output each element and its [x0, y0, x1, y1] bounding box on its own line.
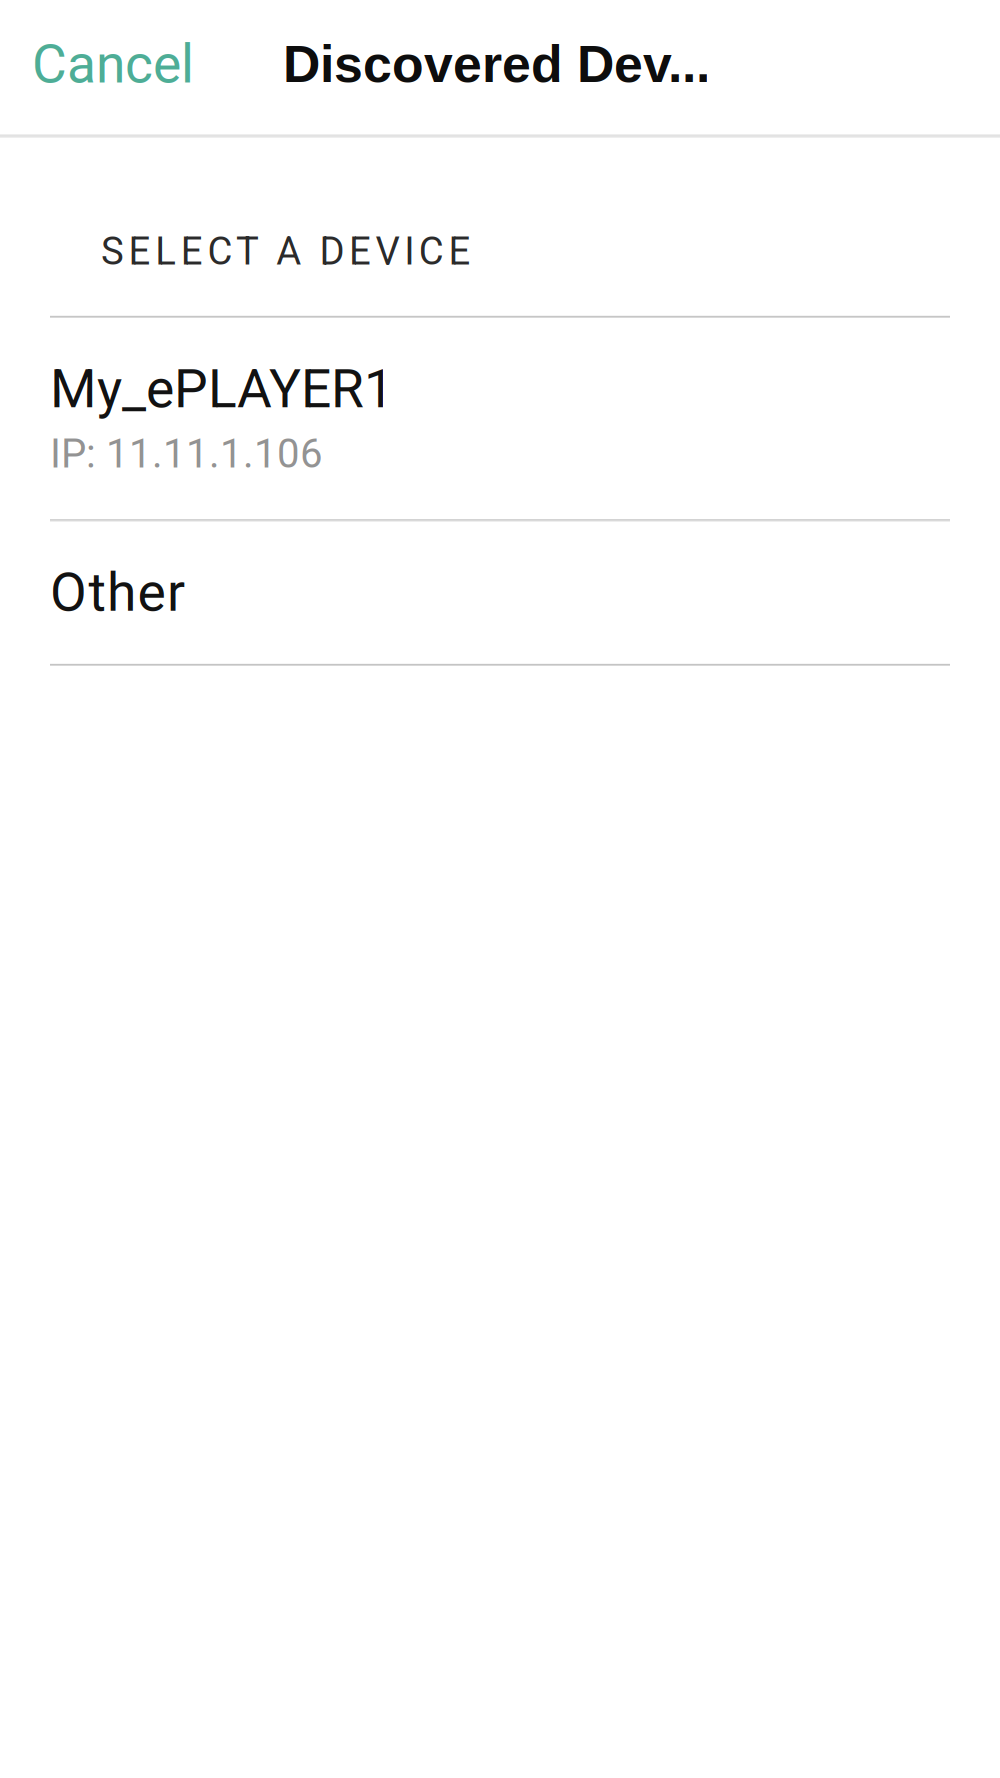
staticText: Discovered Dev...: [283, 35, 710, 93]
staticText: Other: [50, 561, 185, 624]
staticText: Cancel: [32, 33, 194, 96]
staticText: IP: 11.11.1.106: [50, 430, 323, 477]
button[interactable]: My_ePLAYER1: [0, 318, 1000, 519]
staticText: SELECT A DEVICE: [101, 229, 470, 274]
button[interactable]: Cancel: [0, 0, 218, 135]
button[interactable]: Other: [0, 521, 1000, 664]
staticText: My_ePLAYER1: [50, 358, 394, 420]
